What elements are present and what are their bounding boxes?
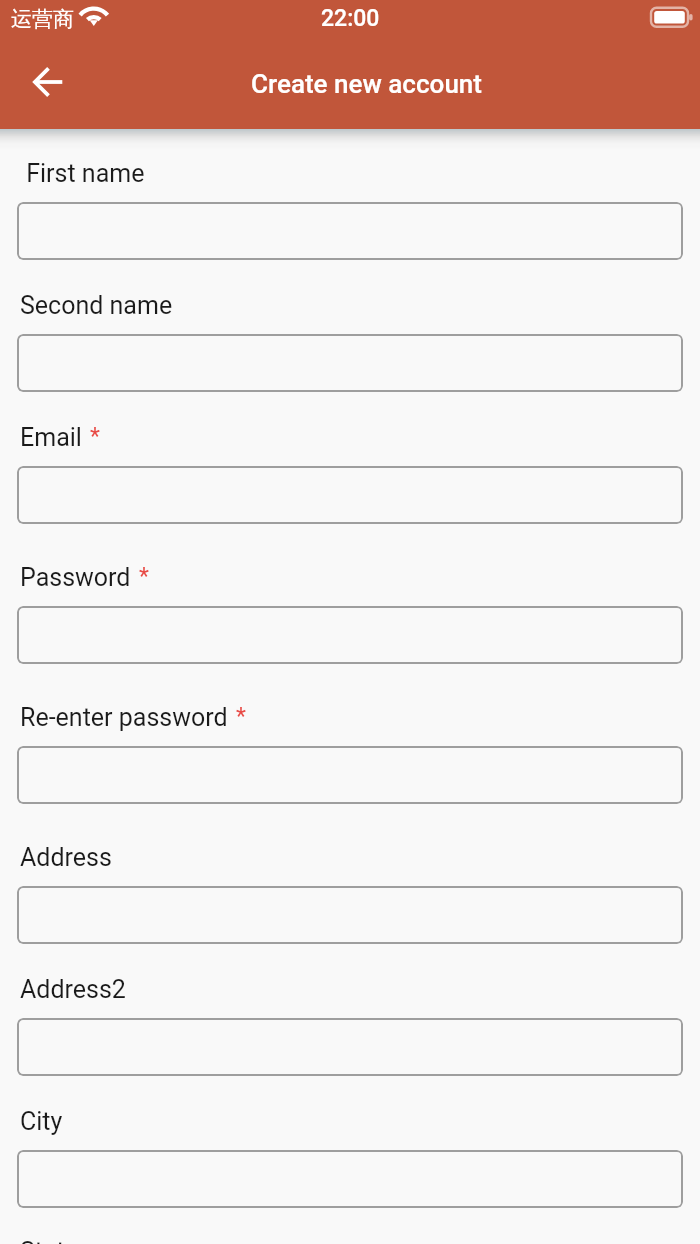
staticText: State xyxy=(20,1237,79,1244)
button[interactable] xyxy=(17,1018,683,1076)
button[interactable] xyxy=(17,1150,683,1208)
staticText: Email xyxy=(20,423,82,452)
staticText: Address xyxy=(20,843,112,872)
staticText: Address2 xyxy=(20,975,126,1004)
button[interactable] xyxy=(17,202,683,260)
button[interactable] xyxy=(17,886,683,944)
button[interactable]: Navigate up xyxy=(19,53,76,110)
button[interactable] xyxy=(17,334,683,392)
staticText: 运营商 xyxy=(11,6,74,32)
staticText: Password xyxy=(20,563,131,592)
staticText: * xyxy=(236,703,246,730)
button[interactable] xyxy=(17,466,683,524)
staticText: * xyxy=(90,423,100,450)
staticText: Create new account xyxy=(33,69,700,99)
staticText: * xyxy=(139,563,149,590)
other: Wi-Fi xyxy=(78,0,110,44)
button[interactable] xyxy=(17,746,683,804)
staticText: 22:00 xyxy=(321,5,380,32)
staticText: First name xyxy=(20,159,145,188)
button[interactable] xyxy=(17,606,683,664)
staticText: Re-enter password xyxy=(20,703,228,732)
staticText: City xyxy=(20,1107,63,1136)
staticText: Second name xyxy=(20,291,173,320)
other: Battery full xyxy=(651,0,696,44)
